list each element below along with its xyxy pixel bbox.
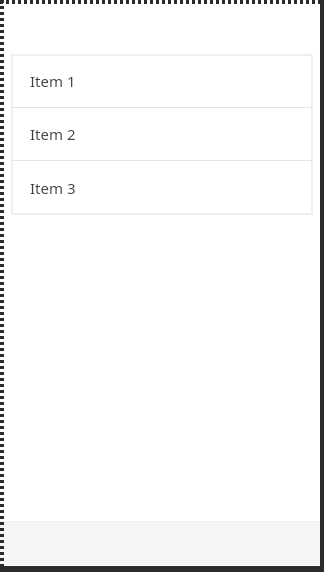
staticText: Item 1 [30, 71, 76, 91]
staticText: Item 2 [30, 124, 76, 144]
button[interactable]: Item 1 [12, 55, 312, 107]
button[interactable]: Item 2 [12, 108, 312, 160]
staticText: Item 3 [30, 178, 76, 198]
button[interactable]: Item 3 [12, 161, 312, 214]
